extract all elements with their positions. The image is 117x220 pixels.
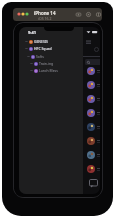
button[interactable] — [79, 135, 100, 147]
button[interactable] — [79, 107, 100, 119]
button[interactable]: GENESIS — [19, 38, 83, 45]
staticText: 9:41 — [28, 30, 36, 35]
button[interactable]: Softs — [19, 53, 83, 60]
button[interactable]: Messages — [89, 179, 98, 188]
button[interactable] — [79, 149, 100, 161]
button[interactable] — [79, 65, 100, 77]
staticText: iOS 16.2 — [38, 16, 52, 21]
button[interactable] — [79, 93, 100, 105]
staticText: Lunch Mess — [39, 68, 58, 73]
button[interactable]: Train-ing — [19, 60, 83, 67]
button[interactable]: HFC Squad — [19, 45, 83, 52]
button[interactable] — [79, 163, 100, 175]
button[interactable]: Lunch Mess — [19, 67, 83, 74]
button[interactable]: Record screen — [85, 11, 92, 18]
button[interactable]: Search — [85, 59, 100, 65]
staticText: Train-ing — [39, 61, 54, 66]
staticText: GENESIS — [34, 39, 48, 44]
button[interactable] — [79, 121, 100, 133]
staticText: Softs — [36, 54, 44, 59]
button[interactable]: Screenshot — [75, 11, 82, 18]
button[interactable]: Favourite — [94, 47, 99, 52]
button[interactable]: Menu — [86, 40, 91, 45]
staticText: HFC Squad — [34, 46, 52, 51]
button[interactable] — [79, 79, 100, 91]
button[interactable]: Layout options — [95, 11, 102, 18]
staticText: iPhone 14 — [34, 10, 56, 16]
